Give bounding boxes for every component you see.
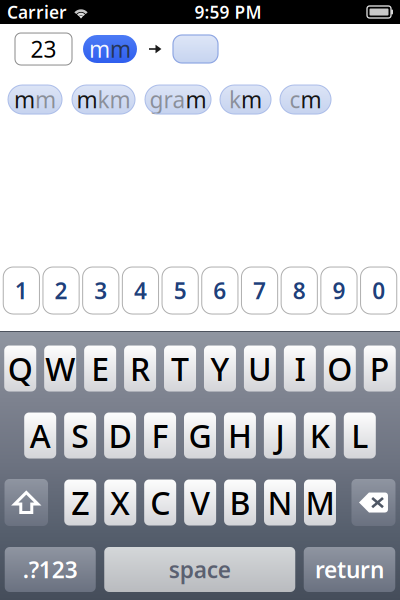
- staticText: J: [275, 414, 284, 457]
- staticText: m: [300, 84, 321, 114]
- button[interactable]: H: [224, 412, 256, 458]
- button[interactable]: K: [304, 412, 336, 458]
- staticText: G: [188, 414, 211, 457]
- staticText: Z: [71, 481, 89, 524]
- button[interactable]: 0: [360, 267, 397, 314]
- button[interactable]: 1: [3, 267, 39, 314]
- staticText: m: [35, 84, 56, 114]
- staticText: O: [327, 347, 352, 390]
- staticText: m: [241, 84, 262, 114]
- staticText: 9:59 PM: [194, 0, 261, 23]
- button[interactable]: Q: [4, 345, 36, 391]
- button[interactable]: R: [124, 345, 156, 391]
- button[interactable]: W: [44, 345, 76, 391]
- button[interactable]: V: [184, 479, 216, 525]
- staticText: 9: [332, 275, 345, 305]
- staticText: P: [370, 347, 390, 390]
- button[interactable]: Result unit: [173, 35, 218, 63]
- button[interactable]: G: [184, 412, 216, 458]
- staticText: 8: [293, 275, 306, 305]
- staticText: 2: [55, 275, 68, 305]
- button[interactable]: 7: [241, 267, 278, 314]
- staticText: k: [229, 84, 241, 114]
- staticText: m: [76, 84, 97, 114]
- staticText: B: [230, 481, 251, 524]
- staticText: S: [71, 414, 89, 457]
- button[interactable]: O: [324, 345, 356, 391]
- button[interactable]: B: [224, 479, 256, 525]
- staticText: 4: [134, 275, 147, 305]
- button[interactable]: Delete: [351, 479, 395, 526]
- staticText: L: [351, 414, 368, 457]
- staticText: D: [109, 414, 132, 457]
- staticText: 1: [15, 275, 28, 305]
- staticText: H: [228, 414, 252, 457]
- button[interactable]: A: [24, 412, 56, 458]
- staticText: K: [310, 414, 330, 457]
- button[interactable]: c: [280, 85, 331, 114]
- button[interactable]: 6: [202, 267, 238, 314]
- button[interactable]: return: [304, 547, 395, 592]
- staticText: m: [14, 84, 35, 114]
- staticText: U: [248, 347, 272, 390]
- button[interactable]: L: [344, 412, 376, 458]
- button[interactable]: J: [264, 412, 296, 458]
- button[interactable]: 5: [162, 267, 198, 314]
- button[interactable]: M: [304, 479, 336, 525]
- staticText: c: [289, 84, 300, 114]
- button[interactable]: D: [104, 412, 136, 458]
- staticText: m: [89, 34, 110, 64]
- staticText: 3: [94, 275, 107, 305]
- button[interactable]: I: [284, 345, 316, 391]
- staticText: m: [185, 84, 206, 114]
- staticText: E: [91, 347, 109, 390]
- button[interactable]: 2: [43, 267, 79, 314]
- button[interactable]: m: [72, 85, 135, 114]
- button[interactable]: U: [244, 345, 276, 391]
- staticText: I: [294, 347, 305, 390]
- staticText: 7: [253, 275, 266, 305]
- button[interactable]: Shift: [4, 479, 48, 526]
- staticText: km: [97, 84, 130, 114]
- button[interactable]: m: [8, 85, 62, 114]
- staticText: F: [152, 414, 169, 457]
- button[interactable]: P: [364, 345, 396, 391]
- button[interactable]: S: [64, 412, 96, 458]
- button[interactable]: m: [83, 35, 137, 63]
- button[interactable]: X: [104, 479, 136, 525]
- button[interactable]: space: [104, 547, 295, 592]
- staticText: A: [30, 414, 51, 457]
- button[interactable]: Y: [204, 345, 236, 391]
- staticText: return: [315, 554, 384, 584]
- button[interactable]: C: [144, 479, 176, 525]
- button[interactable]: 8: [281, 267, 317, 314]
- staticText: .?123: [23, 554, 78, 584]
- button[interactable]: gra: [145, 85, 211, 114]
- staticText: 0: [372, 275, 385, 305]
- staticText: C: [150, 481, 170, 524]
- staticText: X: [110, 481, 130, 524]
- button[interactable]: E: [84, 345, 116, 391]
- button[interactable]: 9: [321, 267, 357, 314]
- staticText: V: [190, 481, 210, 524]
- staticText: 23: [30, 34, 56, 64]
- button[interactable]: 4: [122, 267, 159, 314]
- staticText: 6: [213, 275, 226, 305]
- staticText: T: [171, 347, 189, 390]
- button[interactable]: 3: [83, 267, 119, 314]
- staticText: space: [169, 554, 231, 584]
- staticText: Y: [210, 347, 229, 390]
- button[interactable]: Z: [64, 479, 96, 525]
- staticText: Q: [8, 347, 33, 390]
- staticText: Carrier: [7, 0, 67, 23]
- staticText: N: [267, 481, 292, 524]
- staticText: m: [110, 34, 131, 64]
- button[interactable]: N: [264, 479, 296, 525]
- button[interactable]: .?123: [5, 547, 96, 592]
- button[interactable]: T: [164, 345, 196, 391]
- staticText: W: [45, 347, 75, 390]
- staticText: M: [305, 481, 334, 524]
- button[interactable]: k: [220, 85, 271, 114]
- button[interactable]: F: [144, 412, 176, 458]
- staticText: 5: [174, 275, 187, 305]
